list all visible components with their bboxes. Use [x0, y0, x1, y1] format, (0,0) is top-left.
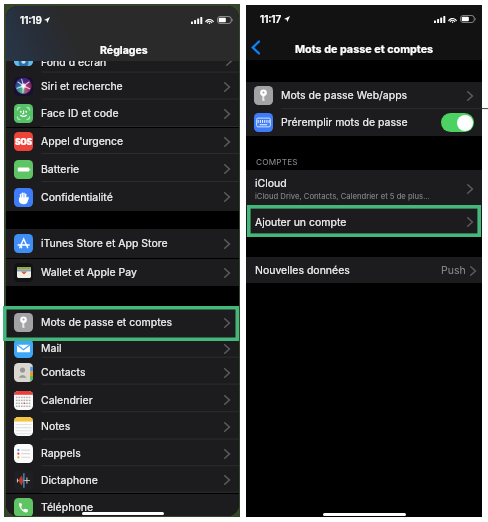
button[interactable]: Siri et recherche: [6, 73, 239, 100]
button[interactable]: Batterie: [6, 155, 239, 183]
staticText: Confidentialité: [41, 191, 113, 204]
button[interactable]: Mots de passe Web/apps: [246, 82, 482, 109]
button[interactable]: iCloud: [246, 170, 482, 207]
button[interactable]: iTunes Store et App Store: [6, 229, 239, 258]
staticText: Siri et recherche: [41, 80, 123, 93]
staticText: Batterie: [41, 163, 80, 176]
staticText: Contacts: [41, 366, 86, 379]
staticText: Mots de passe et comptes: [295, 43, 434, 56]
staticText: SOS: [15, 137, 32, 147]
button[interactable]: Rappels: [6, 440, 239, 467]
button[interactable]: [247, 205, 481, 237]
button[interactable]: Mail: [6, 338, 239, 359]
staticText: Wallet et Apple Pay: [41, 266, 137, 279]
staticText: iTunes Store et App Store: [41, 237, 168, 250]
staticText: Téléphone: [41, 501, 94, 514]
staticText: Réglages: [100, 44, 148, 57]
staticText: iCloud: [255, 177, 287, 190]
button[interactable]: Calendrier: [6, 386, 239, 414]
staticText: Rappels: [41, 447, 81, 460]
button[interactable]: Nouvelles données: [246, 257, 482, 283]
staticText: 11:19: [20, 14, 42, 26]
staticText: Face ID et code: [41, 107, 119, 120]
button[interactable]: Dictaphone: [6, 467, 239, 493]
button[interactable]: Mots de passe et comptes: [6, 307, 239, 338]
button[interactable]: Téléphone: [6, 494, 239, 516]
button[interactable]: Notes: [6, 413, 239, 440]
staticText: Mots de passe Web/apps: [281, 89, 408, 102]
button[interactable]: [3, 306, 239, 341]
staticText: Mail: [41, 342, 62, 355]
staticText: Push: [441, 264, 466, 277]
button[interactable]: Confidentialité: [6, 183, 239, 211]
button[interactable]: Face ID et code: [6, 100, 239, 127]
button[interactable]: Ajouter un compte: [246, 207, 482, 237]
staticText: 11:17: [260, 13, 282, 25]
staticText: iCloud Drive, Contacts, Calendrier et 5 …: [255, 192, 430, 201]
button[interactable]: Fond d'écran: [6, 61, 239, 74]
button[interactable]: SOS: [6, 128, 239, 155]
staticText: Préremplir mots de passe: [281, 116, 408, 129]
staticText: Nouvelles données: [255, 264, 350, 277]
staticText: Mots de passe et comptes: [41, 316, 173, 329]
staticText: Appel d'urgence: [41, 135, 124, 148]
staticText: Calendrier: [41, 394, 93, 407]
button[interactable]: Préremplir mots de passe: [441, 113, 474, 132]
staticText: COMPTES: [256, 157, 298, 167]
button[interactable]: Wallet et Apple Pay: [6, 259, 239, 286]
button[interactable]: Préremplir mots de passe: [246, 109, 482, 136]
staticText: Ajouter un compte: [255, 216, 347, 229]
staticText: Notes: [41, 420, 71, 433]
button[interactable]: Retour: [247, 38, 265, 56]
button[interactable]: Contacts: [6, 359, 239, 386]
staticText: Fond d'écran: [41, 61, 107, 69]
staticText: Dictaphone: [41, 474, 98, 487]
